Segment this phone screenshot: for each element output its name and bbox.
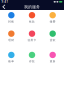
button[interactable]: 缴费 [42,12,63,23]
staticText: 信用卡 [27,38,36,42]
staticText: 缴费 [50,20,56,23]
button[interactable]: 账单 [1,52,22,63]
button[interactable]: 更多 [42,52,63,63]
button[interactable]: 收款 [22,12,42,23]
button[interactable]: 存款 [22,52,42,63]
button[interactable]: 信用卡 [22,30,42,42]
staticText: 我的服务 [24,4,40,9]
button[interactable]: Back [0,4,8,9]
staticText: 账单 [8,60,14,63]
staticText: 收款 [29,20,35,23]
staticText: 更多 [50,60,56,63]
button[interactable]: 理财 [1,30,22,42]
staticText: 贷款 [50,38,56,42]
staticText: 理财 [8,38,14,42]
staticText: 存款 [29,60,35,63]
staticText: 转账 [8,20,14,23]
button[interactable]: 贷款 [42,30,63,42]
staticText: 9:41 [2,0,9,3]
button[interactable]: 转账 [1,12,22,23]
